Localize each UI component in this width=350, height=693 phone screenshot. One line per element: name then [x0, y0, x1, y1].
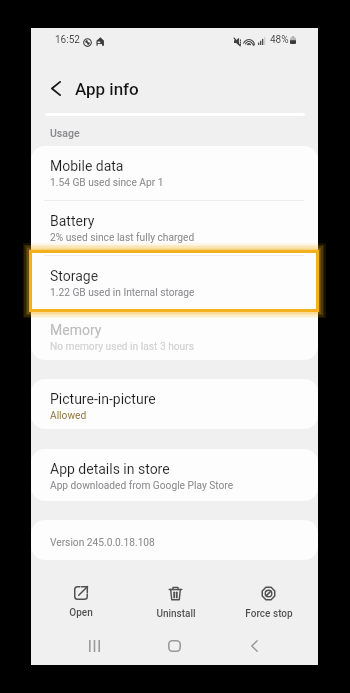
- button[interactable]: Memory: [31, 310, 318, 360]
- button[interactable]: App details in store: [31, 449, 318, 501]
- staticText: Version 245.0.0.18.108: [50, 537, 155, 549]
- staticText: 2% used since last fully charged: [50, 232, 195, 244]
- staticText: Picture-in-picture: [50, 391, 156, 407]
- staticText: Allowed: [50, 410, 87, 422]
- button[interactable]: Storage: [31, 256, 318, 309]
- staticText: Mobile data: [50, 158, 124, 174]
- button[interactable]: Open: [41, 579, 120, 625]
- button[interactable]: Back: [239, 631, 269, 661]
- staticText: Uninstall: [156, 608, 196, 620]
- staticText: 1.54 GB used since Apr 1: [50, 177, 164, 189]
- staticText: Memory: [50, 322, 102, 338]
- staticText: App info: [75, 79, 139, 99]
- staticText: No memory used in last 3 hours: [50, 341, 194, 353]
- staticText: Battery: [50, 213, 95, 229]
- button[interactable]: Version 245.0.0.18.108: [31, 520, 318, 560]
- button[interactable]: Force stop: [229, 579, 308, 626]
- button[interactable]: Picture-in-picture: [31, 379, 318, 429]
- staticText: Force stop: [245, 608, 293, 620]
- staticText: App details in store: [50, 461, 170, 477]
- staticText: Open: [69, 607, 93, 619]
- staticText: 48%: [270, 34, 289, 46]
- button[interactable]: Battery: [31, 201, 318, 255]
- button[interactable]: Uninstall: [136, 579, 215, 626]
- button[interactable]: Home: [159, 631, 189, 661]
- staticText: Usage: [50, 127, 80, 139]
- staticText: 1.22 GB used in Internal storage: [50, 287, 195, 299]
- button[interactable]: Navigate up: [42, 74, 70, 102]
- button[interactable]: Mobile data: [31, 146, 318, 200]
- staticText: 16:52: [55, 34, 80, 46]
- staticText: Storage: [50, 268, 99, 284]
- button[interactable]: Recent apps: [79, 631, 109, 661]
- staticText: App downloaded from Google Play Store: [50, 480, 234, 492]
